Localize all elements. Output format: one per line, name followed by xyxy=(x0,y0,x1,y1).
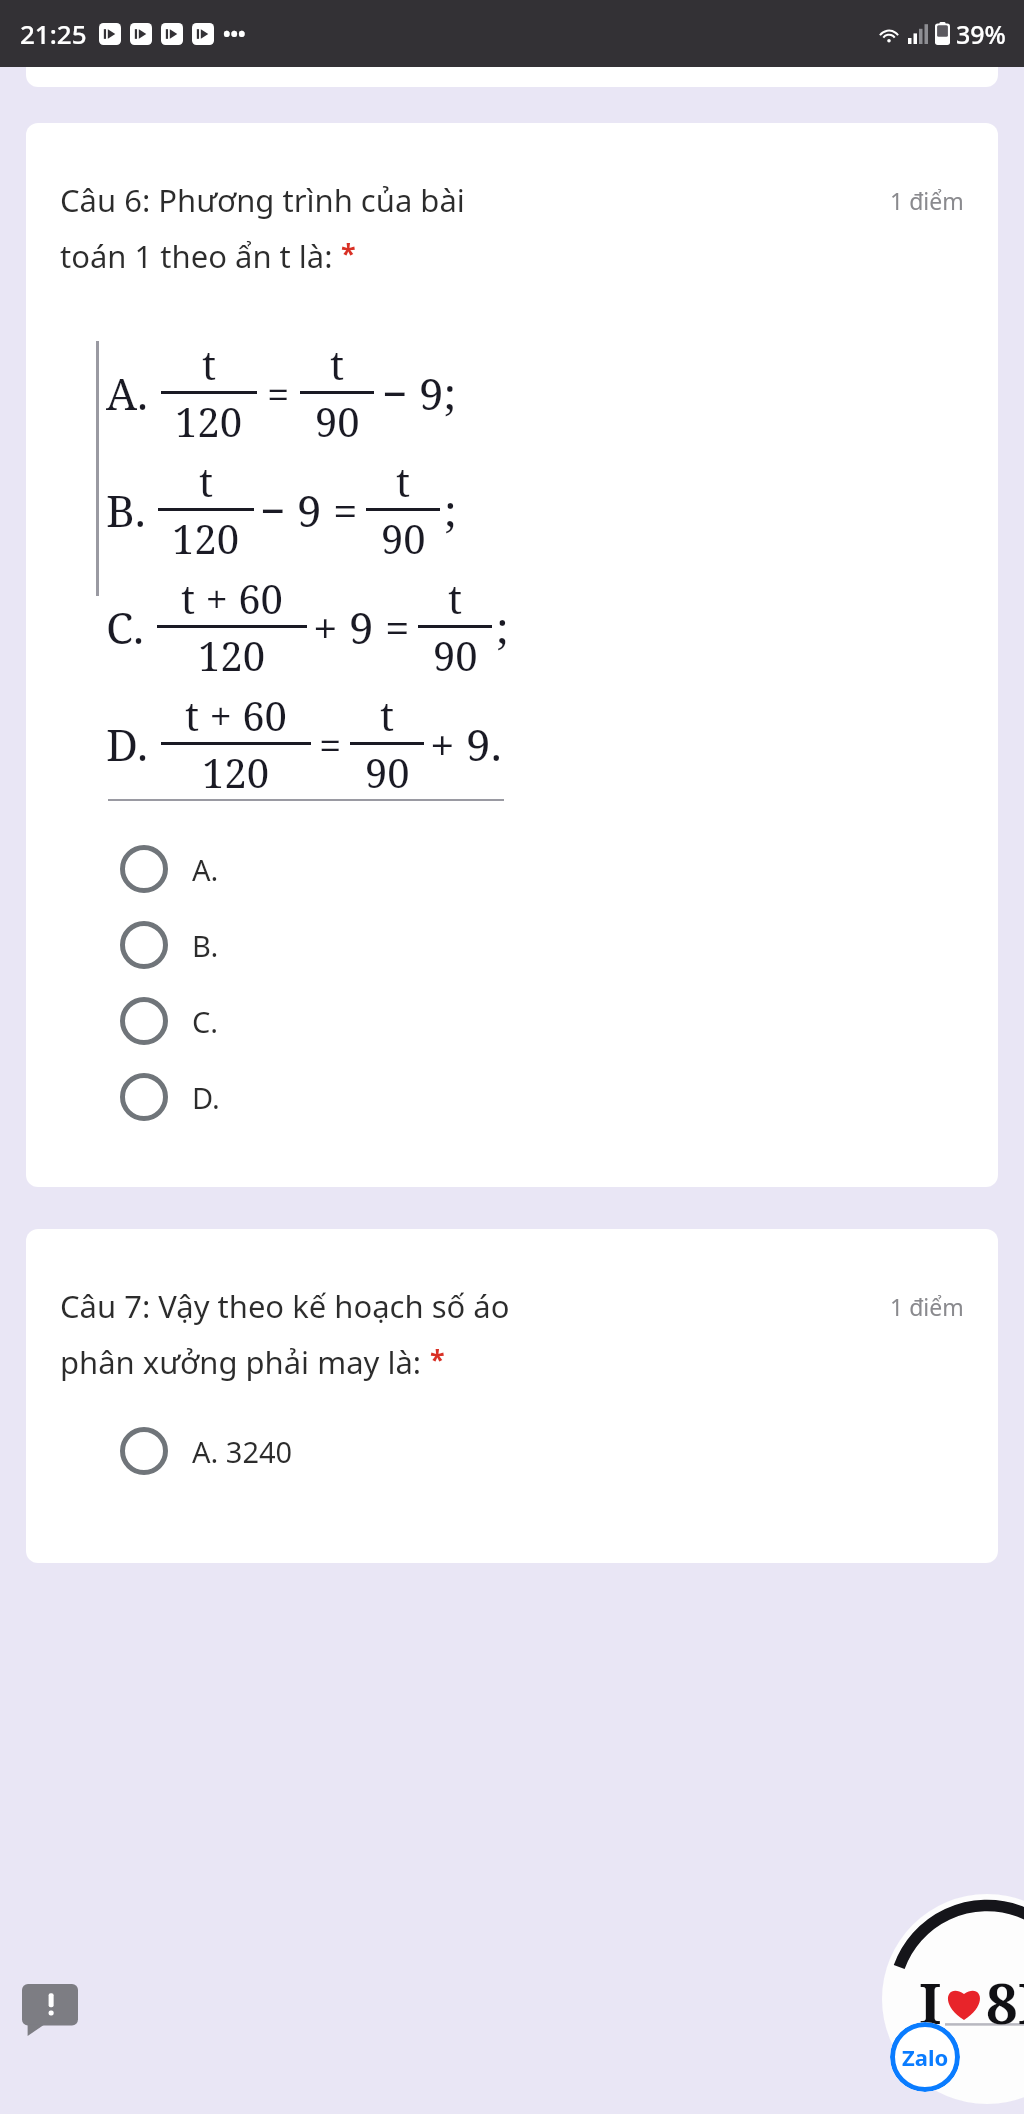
staticText: 90 xyxy=(381,511,426,565)
staticText: ; xyxy=(444,480,457,540)
staticText: phân xưởng phải may là: xyxy=(60,1341,422,1383)
staticText: toán 1 theo ẩn t là: xyxy=(60,235,333,277)
staticText: 1 điểm xyxy=(890,185,964,216)
staticText: 39% xyxy=(956,17,1006,51)
staticText: t xyxy=(202,337,217,391)
staticText: D. xyxy=(106,714,149,774)
staticText: 120 xyxy=(175,394,243,448)
staticText: * xyxy=(430,1341,445,1378)
staticText: ••• xyxy=(223,20,246,47)
button[interactable]: A. 3240 xyxy=(60,1413,964,1489)
staticText: t + 60 xyxy=(185,688,287,742)
staticText: Zalo xyxy=(902,2042,949,2072)
staticText: I xyxy=(919,1964,942,2040)
button[interactable]: D. xyxy=(60,1059,964,1135)
staticText: + 9 = xyxy=(313,597,410,657)
staticText: C. xyxy=(106,597,145,657)
button[interactable]: C. xyxy=(60,983,964,1059)
staticText: t xyxy=(396,454,411,508)
staticText: 90 xyxy=(315,394,360,448)
staticText: Câu 6: Phương trình của bài xyxy=(60,179,465,221)
staticText: A. 3240 xyxy=(192,1432,293,1471)
staticText: + 9. xyxy=(430,714,502,774)
staticText: ; xyxy=(496,597,509,657)
staticText: t xyxy=(330,337,345,391)
staticText: C. xyxy=(192,1002,219,1041)
staticText: 120 xyxy=(202,745,270,799)
staticText: 1 điểm xyxy=(890,1291,964,1322)
staticText: 8B xyxy=(986,1964,1024,2040)
staticText: 120 xyxy=(198,628,266,682)
button[interactable]: Report a problem xyxy=(22,1984,78,2036)
button[interactable]: Zalo chat bubble xyxy=(882,1894,1024,2104)
staticText: − 9; xyxy=(382,363,457,423)
staticText: B. xyxy=(192,926,219,965)
staticText: = xyxy=(267,366,290,420)
button[interactable]: A. xyxy=(60,831,964,907)
staticText: t + 60 xyxy=(181,571,283,625)
staticText: t xyxy=(448,571,463,625)
staticText: * xyxy=(341,235,356,272)
staticText: t xyxy=(199,454,214,508)
staticText: 120 xyxy=(172,511,240,565)
staticText: Câu 7: Vậy theo kế hoạch số áo xyxy=(60,1285,510,1327)
staticText: 90 xyxy=(433,628,478,682)
staticText: A. xyxy=(106,363,149,423)
staticText: 21:25 xyxy=(20,16,87,51)
staticText: B. xyxy=(106,480,146,540)
staticText: t xyxy=(380,688,395,742)
staticText: − 9 = xyxy=(260,480,358,540)
staticText: A. xyxy=(192,850,219,889)
staticText: 90 xyxy=(365,745,410,799)
staticText: D. xyxy=(192,1078,220,1117)
staticText: = xyxy=(319,717,342,771)
button[interactable]: B. xyxy=(60,907,964,983)
